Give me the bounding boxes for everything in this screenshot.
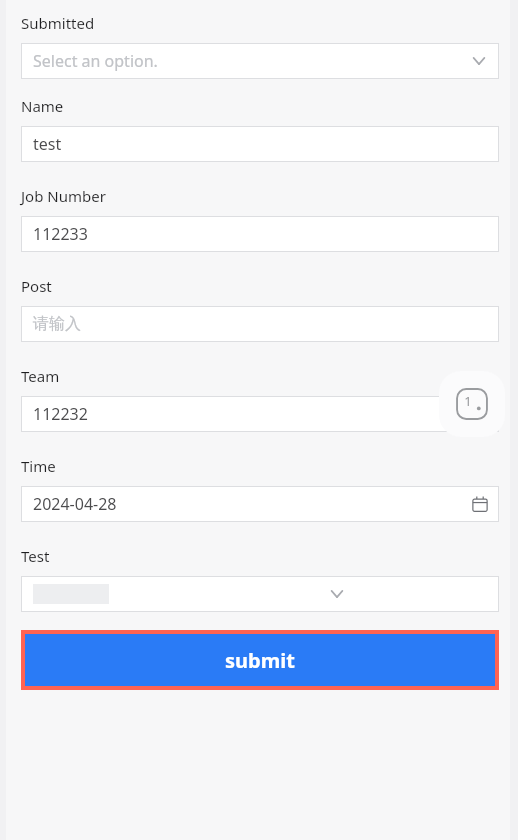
button[interactable]: 2024-04-28 (21, 486, 499, 522)
staticText: 112232 (33, 403, 88, 425)
staticText: 112233 (33, 223, 88, 245)
staticText: Select an option. (33, 50, 470, 72)
staticText: submit (225, 647, 295, 674)
button[interactable]: submit (25, 634, 495, 686)
staticText: Time (21, 456, 56, 476)
staticText: test (33, 133, 62, 155)
staticText: Team (21, 366, 60, 386)
button[interactable]: 112232 (21, 396, 499, 432)
staticText: 请输入 (33, 314, 81, 334)
staticText: 1 (464, 392, 472, 410)
staticText: 2024-04-28 (33, 493, 472, 515)
button[interactable]: 请输入 (21, 306, 499, 342)
button[interactable]: 112233 (21, 216, 499, 252)
other: Pick date (472, 496, 488, 512)
staticText: Submitted (21, 13, 95, 33)
staticText: Name (21, 96, 64, 116)
button[interactable]: test (21, 126, 499, 162)
staticText: Post (21, 276, 52, 296)
button[interactable]: Select an option. (21, 43, 499, 79)
staticText: Test (21, 546, 50, 566)
staticText: Job Number (21, 186, 106, 206)
button[interactable] (21, 576, 499, 612)
button[interactable]: Open floating window (439, 371, 505, 437)
